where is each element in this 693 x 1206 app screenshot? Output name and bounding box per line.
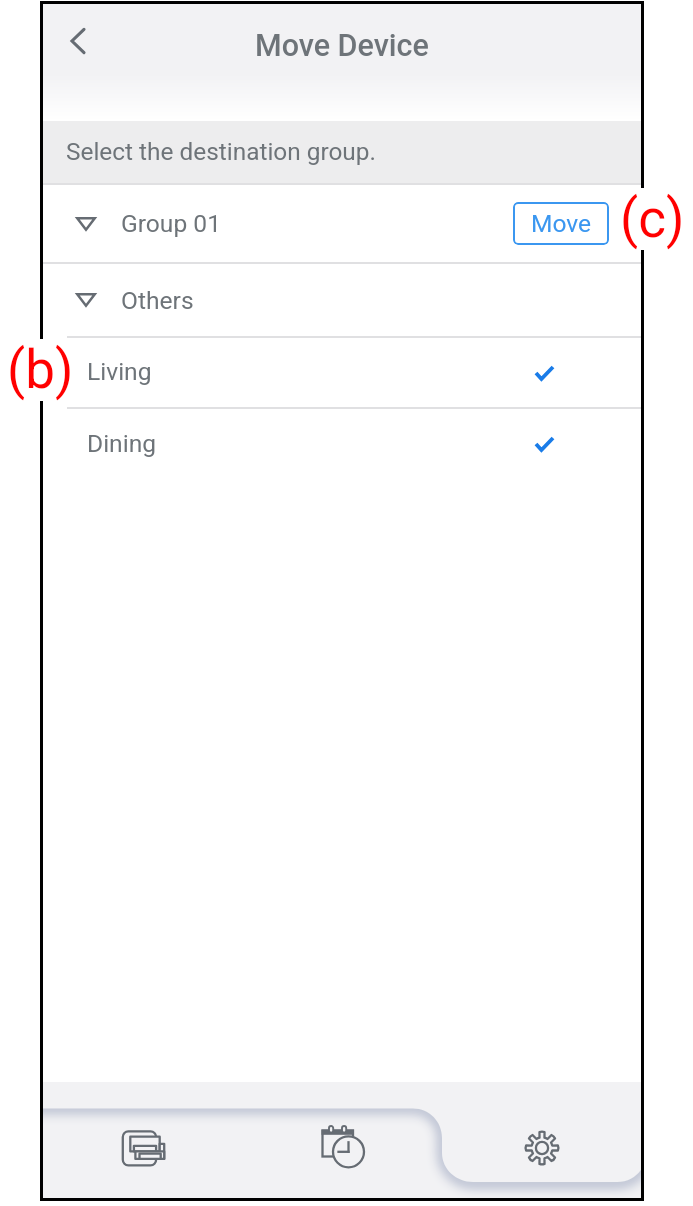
staticText: Group 01 <box>121 209 221 238</box>
button[interactable]: Settings <box>442 1090 641 1198</box>
button[interactable]: Group 01 <box>43 185 641 262</box>
staticText: Move Device <box>255 28 429 64</box>
staticText: (c) <box>620 188 685 250</box>
staticText: Dining <box>87 429 157 458</box>
staticText: Move <box>531 209 592 238</box>
button[interactable]: Devices <box>43 1090 243 1198</box>
staticText: Others <box>121 286 194 315</box>
button[interactable]: Dining <box>43 409 641 479</box>
button[interactable]: Others <box>43 264 641 336</box>
staticText: Select the destination group. <box>66 137 376 166</box>
button[interactable]: Move <box>513 202 609 245</box>
button[interactable]: Schedule <box>243 1090 442 1198</box>
button[interactable]: Living <box>43 338 641 407</box>
staticText: (b) <box>7 339 74 401</box>
staticText: Living <box>87 357 152 386</box>
button[interactable]: Back <box>43 5 113 77</box>
